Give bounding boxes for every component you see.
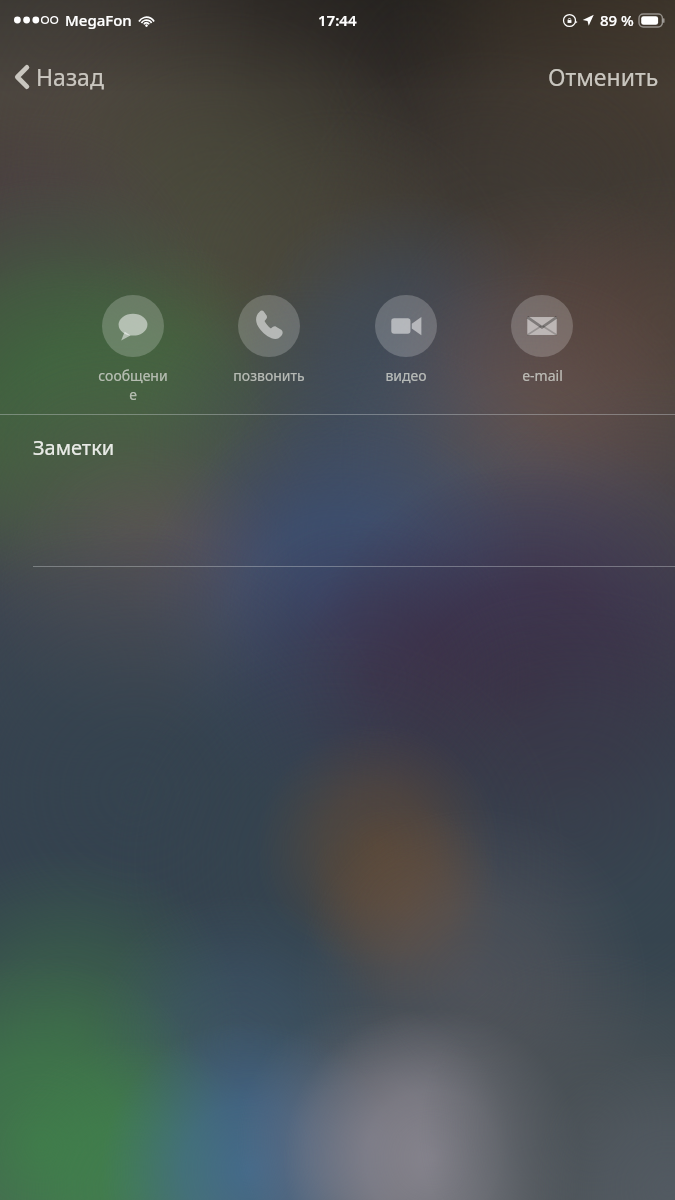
staticText: сообщение [96,366,170,404]
staticText: MegaFon [65,10,132,30]
button[interactable]: E-mail [505,295,579,385]
staticText: Назад [36,61,104,92]
button[interactable]: Заметки [0,415,675,567]
button[interactable]: Отменить [538,55,669,98]
staticText: e-mail [522,366,563,385]
staticText: 17:44 [318,10,357,30]
button[interactable]: Назад [6,55,116,98]
staticText: Отменить [548,61,659,92]
staticText: Заметки [33,434,115,461]
button[interactable]: Call [232,295,306,385]
button[interactable]: Message [96,295,170,404]
button[interactable]: Video call [369,295,443,385]
staticText: 89 % [600,10,634,30]
staticText: позвонить [233,366,305,385]
staticText: видео [385,366,427,385]
